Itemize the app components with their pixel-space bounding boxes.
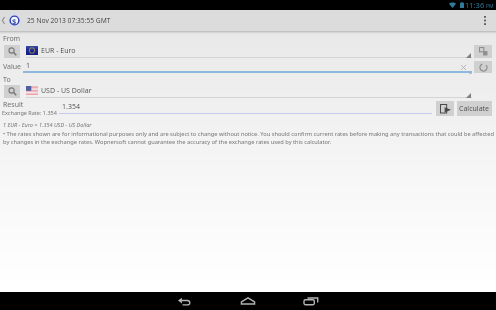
staticText: 25 Nov 2013 07:35:55 GMT: [27, 16, 111, 25]
button[interactable]: EUR - Euro: [26, 45, 472, 58]
staticText: Result: [3, 100, 24, 110]
staticText: Value: [3, 62, 22, 72]
staticText: $: [12, 16, 17, 26]
button[interactable]: Refresh rates: [474, 61, 492, 73]
staticText: From: [3, 34, 21, 44]
button[interactable]: Search currency: [4, 85, 20, 98]
staticText: 1: [26, 61, 31, 71]
staticText: To: [3, 75, 11, 85]
button[interactable]: Calculate: [457, 101, 492, 116]
staticText: 1.354: [62, 102, 80, 112]
button[interactable]: Search currency: [4, 45, 20, 58]
staticText: USD - US Dollar: [41, 86, 92, 96]
button[interactable]: Recent apps: [290, 292, 331, 310]
button[interactable]: Swap currencies: [474, 45, 492, 58]
staticText: 11:36: [465, 0, 485, 10]
staticText: 1 EUR - Euro = 1.354 USD - US Dollar: [3, 121, 92, 128]
button[interactable]: Back: [164, 292, 205, 310]
staticText: • The rates shown are for informational …: [3, 130, 494, 146]
staticText: Exchange Rate: 1.354: [2, 109, 57, 116]
button[interactable]: USD - US Dollar: [26, 85, 472, 98]
button[interactable]: 1: [23, 61, 472, 73]
staticText: Calculate: [459, 104, 490, 114]
button[interactable]: Home: [227, 292, 268, 310]
staticText: PM: [486, 3, 494, 10]
button[interactable]: Open calculator: [436, 101, 454, 116]
staticText: EUR - Euro: [41, 46, 76, 56]
button[interactable]: More options: [477, 10, 493, 31]
